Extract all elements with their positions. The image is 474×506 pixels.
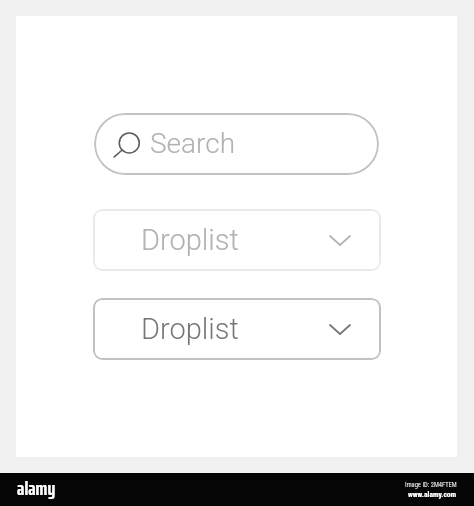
staticText: Image ID: 2M4FTEM xyxy=(405,481,457,489)
staticText: Droplist xyxy=(141,223,239,257)
other: Expand dropdown xyxy=(329,235,351,246)
other: Expand dropdown xyxy=(329,324,351,335)
other: Search xyxy=(116,132,142,158)
button[interactable]: Droplist xyxy=(93,209,381,271)
staticText: Search xyxy=(150,127,236,160)
button[interactable]: Droplist xyxy=(93,298,381,360)
staticText: Droplist xyxy=(141,312,239,346)
staticText: alamy xyxy=(17,472,56,503)
button[interactable]: Search xyxy=(94,113,379,175)
staticText: www.alamy.com xyxy=(408,490,457,499)
